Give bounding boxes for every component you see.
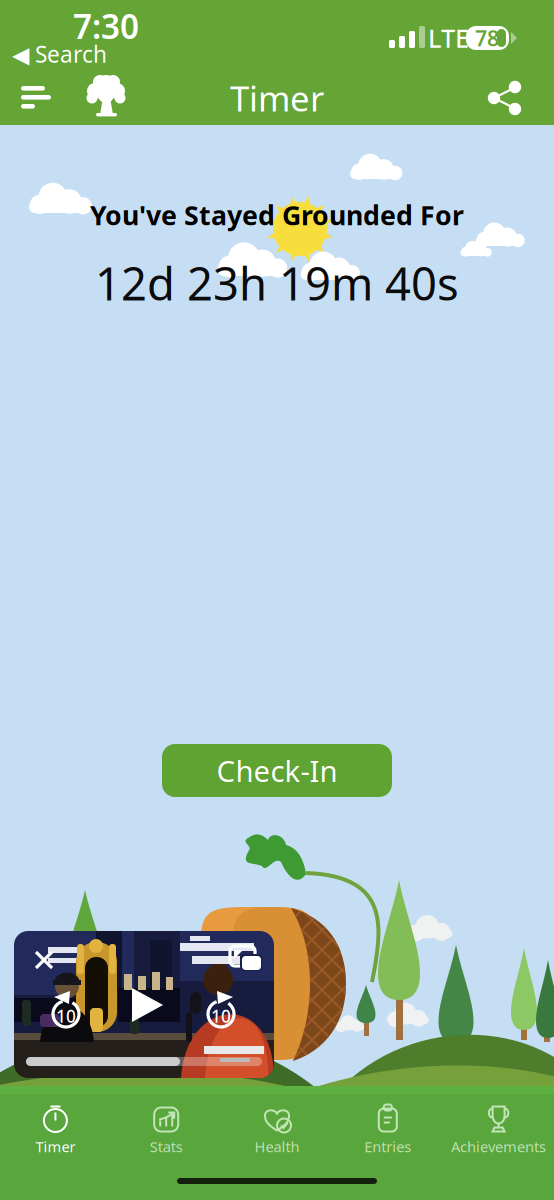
button[interactable]: ◀ Search bbox=[12, 41, 122, 67]
staticText: 10 bbox=[56, 1004, 76, 1027]
button[interactable]: Health bbox=[222, 1098, 332, 1160]
staticText: You've Stayed Grounded For bbox=[90, 197, 464, 233]
staticText: 12d 23h 19m 40s bbox=[95, 253, 459, 313]
button[interactable]: Share bbox=[484, 78, 530, 118]
staticText: Check-In bbox=[216, 751, 337, 790]
staticText: Stats bbox=[150, 1137, 183, 1156]
staticText: Timer bbox=[35, 1137, 75, 1156]
staticText: ◀ Search bbox=[12, 39, 107, 69]
staticText: Timer bbox=[230, 75, 324, 121]
button[interactable]: Timer bbox=[0, 1098, 111, 1160]
button[interactable]: Entries bbox=[332, 1098, 443, 1160]
staticText: 10 bbox=[211, 1004, 231, 1027]
button[interactable]: Stats bbox=[111, 1098, 222, 1160]
staticText: LTE bbox=[428, 21, 469, 55]
staticText: 7:30 bbox=[73, 4, 139, 48]
staticText: Entries bbox=[364, 1137, 411, 1156]
staticText: Health bbox=[254, 1137, 299, 1156]
button[interactable]: Achievements bbox=[443, 1098, 554, 1160]
staticText: Achievements bbox=[451, 1137, 546, 1156]
button[interactable]: Menu bbox=[12, 70, 70, 124]
staticText: 78 bbox=[475, 24, 499, 52]
button[interactable]: Check-In bbox=[162, 744, 392, 797]
